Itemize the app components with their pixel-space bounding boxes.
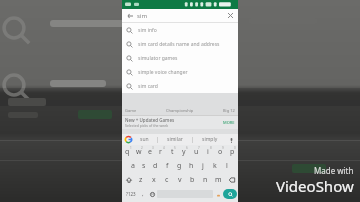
button[interactable]: Emoji	[147, 187, 157, 201]
staticText: w	[136, 147, 142, 157]
button[interactable]: sim info	[122, 23, 238, 37]
staticText: Selected picks of the week	[125, 123, 169, 128]
staticText: k	[213, 161, 217, 171]
button[interactable]: 2	[133, 145, 144, 159]
button[interactable]: sun	[139, 136, 150, 143]
button[interactable]: 5	[166, 145, 178, 159]
button[interactable]: ?123	[123, 187, 138, 201]
button[interactable]: Shift	[122, 173, 135, 187]
staticText: p	[230, 147, 235, 157]
button[interactable]: 8	[202, 145, 214, 159]
button[interactable]: v	[173, 173, 186, 187]
button[interactable]: Google	[125, 136, 132, 143]
staticText: 2	[141, 146, 143, 150]
staticText: j	[202, 161, 204, 171]
button[interactable]: 7	[190, 145, 202, 159]
button[interactable]: Back	[125, 11, 134, 20]
staticText: 1	[130, 146, 132, 150]
staticText: ,	[142, 190, 144, 198]
button[interactable]: 0	[226, 145, 238, 159]
staticText: simulator games	[138, 55, 178, 62]
button[interactable]: s	[138, 159, 149, 173]
button[interactable]: l	[221, 159, 233, 173]
button[interactable]: Voice input	[227, 136, 235, 144]
button[interactable]: b	[186, 173, 199, 187]
button[interactable]: similar	[166, 136, 184, 143]
button[interactable]: a	[127, 159, 138, 173]
staticText: e	[148, 147, 152, 157]
staticText: 8	[210, 146, 212, 150]
button[interactable]: 1	[122, 145, 133, 159]
button[interactable]: n	[199, 173, 212, 187]
button[interactable]: 4	[155, 145, 166, 159]
staticText: simply	[202, 136, 218, 143]
staticText: y	[182, 147, 186, 157]
staticText: sim info	[138, 27, 157, 34]
button[interactable]: Backspace	[225, 173, 238, 187]
staticText: 9	[222, 146, 224, 150]
staticText: m	[215, 175, 222, 185]
staticText: sim	[137, 12, 148, 20]
button[interactable]: z	[135, 173, 147, 187]
staticText: h	[189, 161, 194, 171]
staticText: d	[153, 161, 158, 171]
button[interactable]: m	[212, 173, 225, 187]
button[interactable]: 6	[178, 145, 190, 159]
staticText: sun	[140, 136, 149, 143]
button[interactable]: Search	[223, 189, 237, 199]
staticText: t	[171, 147, 174, 157]
button[interactable]: sim card	[122, 79, 238, 93]
staticText: similar	[167, 136, 183, 143]
staticText: g	[177, 161, 182, 171]
staticText: Big 12	[223, 108, 235, 113]
staticText: sim card details name and address	[138, 41, 220, 48]
staticText: x	[152, 175, 156, 185]
button[interactable]: d	[149, 159, 161, 173]
staticText: New + Updated Games	[125, 117, 175, 123]
staticText: sim card	[138, 83, 158, 90]
button[interactable]: Comma	[138, 187, 147, 201]
staticText: VideoShow	[276, 176, 354, 196]
button[interactable]: sim card details name and address	[122, 37, 238, 51]
staticText: MORE	[223, 120, 235, 125]
staticText: ?123	[126, 191, 136, 197]
staticText: 6	[186, 146, 188, 150]
staticText: Championship	[166, 108, 194, 113]
staticText: Made with	[314, 165, 354, 176]
button[interactable]: Clear	[226, 11, 235, 20]
button[interactable]: h	[185, 159, 197, 173]
button[interactable]: Period	[213, 187, 223, 201]
staticText: 4	[163, 146, 165, 150]
staticText: s	[142, 161, 146, 171]
staticText: o	[218, 147, 223, 157]
staticText: b	[190, 175, 195, 185]
button[interactable]: simple voice changer	[122, 65, 238, 79]
button[interactable]: j	[197, 159, 209, 173]
staticText: n	[203, 175, 208, 185]
staticText: i	[207, 147, 209, 157]
staticText: 5	[174, 146, 176, 150]
button[interactable]: 3	[144, 145, 155, 159]
button[interactable]: simulator games	[122, 51, 238, 65]
button[interactable]: x	[147, 173, 160, 187]
button[interactable]: c	[160, 173, 173, 187]
button[interactable]: simply	[201, 136, 219, 143]
button[interactable]: g	[173, 159, 185, 173]
staticText: r	[159, 147, 162, 157]
button[interactable]: k	[209, 159, 221, 173]
staticText: simple voice changer	[138, 69, 188, 76]
staticText: u	[194, 147, 199, 157]
button[interactable]: Back	[122, 9, 238, 22]
staticText: v	[178, 175, 182, 185]
button[interactable]: 9	[214, 145, 226, 159]
staticText: 0	[234, 146, 236, 150]
staticText: c	[165, 175, 169, 185]
staticText: Game	[125, 108, 137, 113]
staticText: q	[125, 147, 130, 157]
button[interactable]: f	[161, 159, 173, 173]
staticText: a	[131, 161, 135, 171]
staticText: 3	[152, 146, 154, 150]
staticText: f	[166, 161, 169, 171]
staticText: l	[226, 161, 228, 171]
